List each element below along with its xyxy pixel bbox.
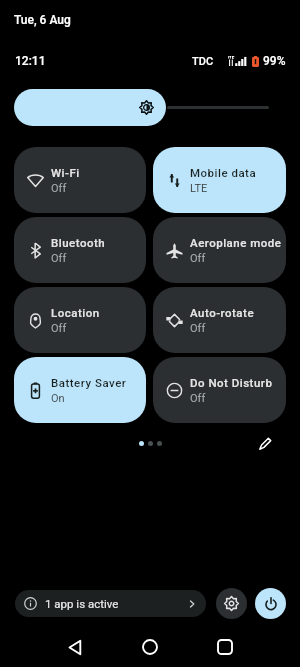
staticText: Bluetooth: [51, 236, 106, 249]
button[interactable]: Battery Saver: [14, 357, 146, 423]
button[interactable]: Location: [14, 287, 146, 353]
staticText: Tue, 6 Aug: [14, 13, 71, 27]
button[interactable]: Settings: [216, 588, 247, 619]
button[interactable]: Bluetooth: [14, 217, 146, 283]
staticText: On: [51, 392, 65, 405]
button[interactable]: Mobile data: [153, 147, 286, 213]
button[interactable]: Do Not Disturb: [153, 357, 286, 423]
button[interactable]: Edit tiles: [256, 434, 274, 452]
button[interactable]: Wi-Fi: [14, 147, 146, 213]
staticText: Aeroplane mode: [190, 236, 282, 249]
button[interactable]: Power: [255, 588, 286, 619]
staticText: Do Not Disturb: [190, 376, 273, 389]
staticText: TDC: [192, 55, 214, 68]
button[interactable]: Recents: [211, 633, 239, 661]
staticText: LTE: [190, 182, 208, 195]
staticText: Off: [51, 252, 67, 265]
staticText: Auto-rotate: [190, 306, 255, 319]
staticText: Location: [51, 306, 100, 319]
button[interactable]: 1 app is active: [15, 590, 206, 617]
button[interactable]: Aeroplane mode: [153, 217, 286, 283]
staticText: 1 app is active: [45, 597, 119, 610]
staticText: Wi-Fi: [51, 166, 80, 179]
staticText: Mobile data: [190, 166, 257, 179]
staticText: Off: [190, 392, 206, 405]
staticText: Battery Saver: [51, 376, 127, 389]
staticText: 12:11: [15, 54, 46, 68]
staticText: Off: [51, 322, 67, 335]
button[interactable]: Back: [61, 633, 89, 661]
staticText: Off: [51, 182, 67, 195]
button[interactable]: [14, 89, 166, 126]
staticText: Off: [190, 252, 206, 265]
staticText: Off: [190, 322, 206, 335]
button[interactable]: Auto-rotate: [153, 287, 286, 353]
staticText: 99%: [263, 54, 286, 68]
button[interactable]: Home: [136, 633, 164, 661]
